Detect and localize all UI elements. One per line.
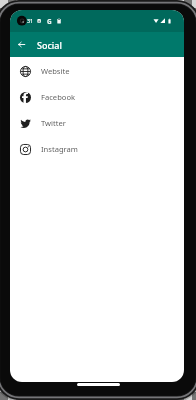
button[interactable]: Back	[13, 36, 30, 53]
staticText: G	[47, 17, 52, 26]
button[interactable]: Facebook	[10, 84, 184, 110]
button[interactable]: Twitter	[10, 110, 184, 136]
staticText: Website	[41, 66, 70, 76]
staticText: 31	[27, 17, 34, 24]
staticText: Instagram	[41, 144, 78, 154]
button[interactable]: Instagram	[10, 136, 184, 162]
staticText: Social	[37, 39, 62, 51]
staticText: Twitter	[41, 118, 66, 128]
staticText: Facebook	[41, 92, 76, 102]
button[interactable]: Website	[10, 58, 184, 84]
